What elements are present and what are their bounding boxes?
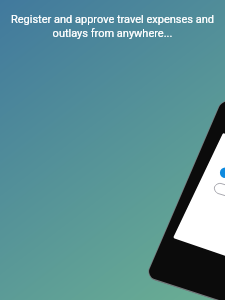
staticText: Register and approve travel expenses and…	[6, 13, 219, 40]
button[interactable]: Register and approve travel expenses and…	[6, 13, 219, 40]
